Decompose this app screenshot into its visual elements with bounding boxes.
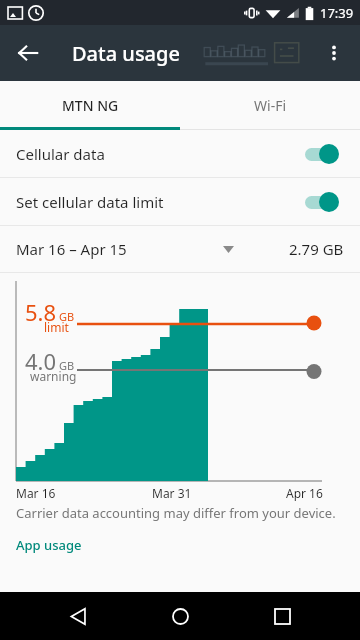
staticText: Apr 16 bbox=[286, 485, 323, 501]
staticText: 4.0 bbox=[25, 346, 57, 376]
staticText: Set cellular data limit bbox=[16, 192, 302, 212]
button[interactable]: Recent apps bbox=[258, 592, 306, 640]
button[interactable]: Back bbox=[4, 29, 52, 77]
staticText: Mar 16 bbox=[16, 485, 56, 501]
button[interactable]: MTN NG bbox=[0, 81, 180, 130]
staticText: limit bbox=[44, 319, 69, 335]
staticText: warning bbox=[30, 368, 77, 384]
staticText: 2.79 GB bbox=[289, 239, 344, 259]
staticText: App usage bbox=[16, 536, 82, 554]
button[interactable]: Wi-Fi bbox=[180, 81, 360, 130]
staticText: 17:39 bbox=[320, 4, 354, 22]
button[interactable]: Cellular data bbox=[0, 130, 360, 177]
staticText: Carrier data accounting may differ from … bbox=[16, 504, 336, 522]
button[interactable]: Set cellular data limit bbox=[0, 178, 360, 225]
button[interactable]: Home bbox=[156, 592, 204, 640]
staticText: Wi-Fi bbox=[254, 96, 287, 115]
staticText: Mar 16 – Apr 15 bbox=[16, 239, 127, 259]
staticText: 5.8 bbox=[25, 297, 57, 327]
staticText: GB bbox=[59, 358, 75, 373]
staticText: Data usage bbox=[72, 40, 180, 67]
button[interactable]: App usage bbox=[16, 536, 82, 554]
staticText: GB bbox=[59, 309, 75, 324]
button[interactable]: More options bbox=[310, 29, 358, 77]
staticText: MTN NG bbox=[62, 96, 119, 115]
button[interactable]: Back bbox=[54, 592, 102, 640]
staticText: Mar 31 bbox=[152, 485, 192, 501]
button[interactable]: Mar 16 – Apr 15 bbox=[0, 226, 360, 272]
staticText: Cellular data bbox=[16, 144, 302, 164]
